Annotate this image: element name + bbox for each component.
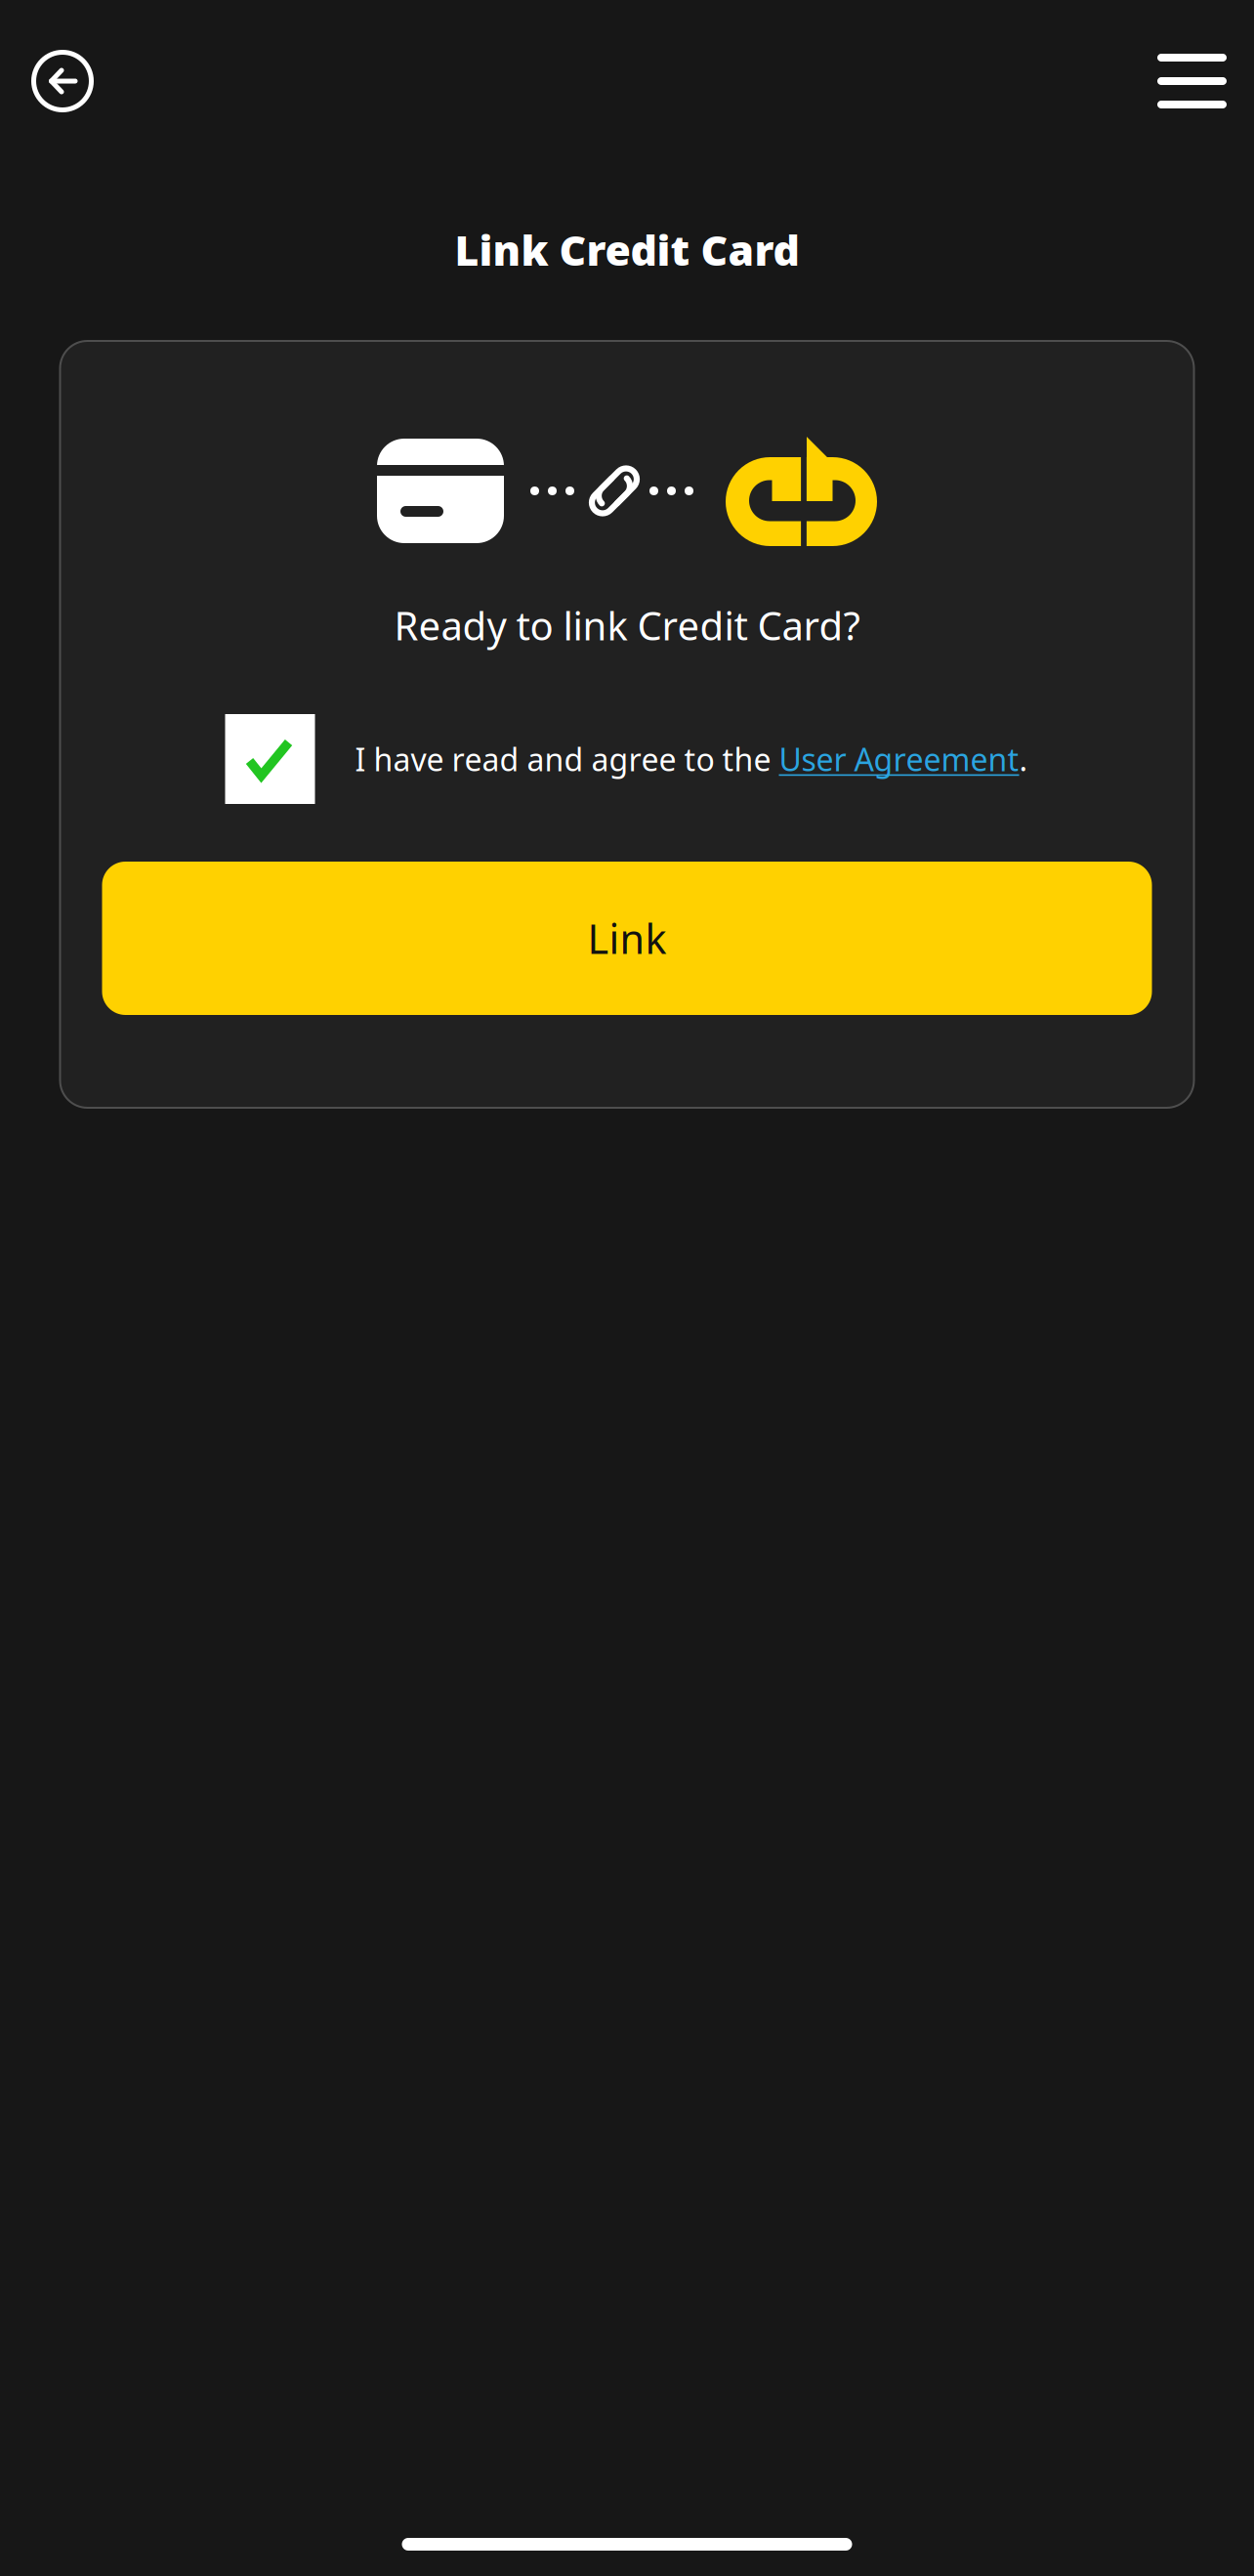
- button[interactable]: Link: [102, 862, 1152, 1015]
- staticText: .: [1019, 738, 1028, 780]
- staticText: Ready to link Credit Card?: [394, 599, 860, 651]
- staticText: I have read and agree to the: [355, 738, 779, 780]
- staticText: Link Credit Card: [455, 222, 799, 277]
- button[interactable]: Menu: [1134, 34, 1254, 128]
- staticText: Link: [587, 912, 667, 965]
- button[interactable]: Back: [0, 34, 117, 128]
- staticText: User Agreement: [779, 738, 1019, 780]
- button[interactable]: I have read and agree to the User Agreem…: [60, 714, 1194, 804]
